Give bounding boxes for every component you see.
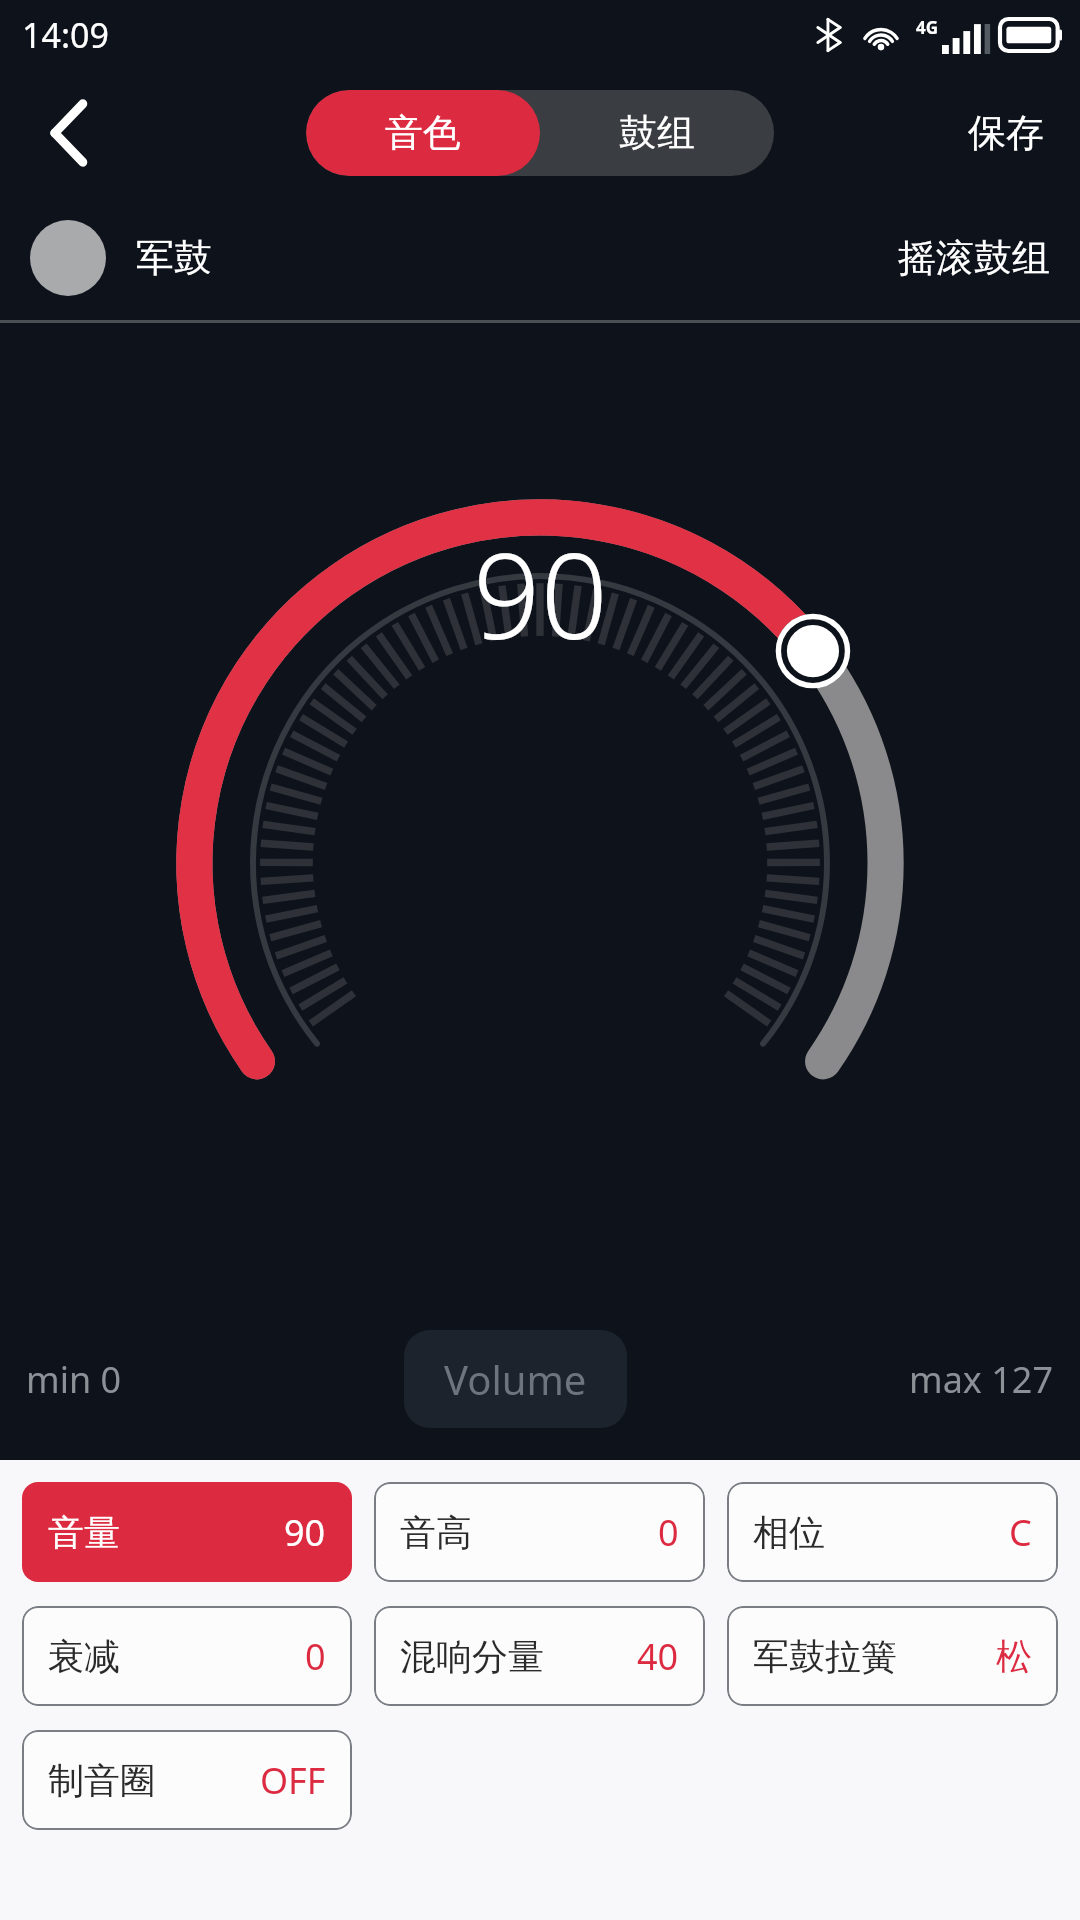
staticText: OFF	[260, 1756, 326, 1805]
button[interactable]: 音高	[374, 1482, 705, 1582]
staticText: 音高	[400, 1510, 472, 1555]
staticText: 军鼓	[136, 234, 212, 282]
staticText: 制音圈	[48, 1758, 156, 1803]
staticText: 保存	[968, 109, 1044, 157]
button[interactable]: 混响分量	[374, 1606, 705, 1706]
button[interactable]: 衰减	[22, 1606, 352, 1706]
staticText: 松	[996, 1634, 1032, 1679]
staticText: 0	[305, 1632, 326, 1681]
staticText: 4G	[916, 16, 939, 39]
staticText: 音色	[385, 109, 461, 157]
button[interactable]: 制音圈	[22, 1730, 352, 1830]
button[interactable]: 音色	[306, 90, 540, 176]
staticText: 90	[473, 513, 608, 674]
staticText: 音量	[48, 1510, 120, 1555]
staticText: 相位	[753, 1510, 825, 1555]
button[interactable]: Back	[20, 83, 120, 183]
staticText: 混响分量	[400, 1634, 544, 1679]
staticText: 鼓组	[619, 109, 695, 157]
staticText: 军鼓拉簧	[753, 1634, 897, 1679]
button[interactable]: 保存	[958, 99, 1054, 167]
staticText: 摇滚鼓组	[898, 234, 1050, 282]
staticText: max 127	[909, 1355, 1054, 1404]
button[interactable]: 军鼓拉簧	[727, 1606, 1058, 1706]
button[interactable]: 音量	[22, 1482, 352, 1582]
other: Volume dial	[0, 323, 1080, 1460]
staticText: 14:09	[22, 12, 109, 58]
staticText: C	[1009, 1508, 1032, 1557]
staticText: Volume	[444, 1352, 587, 1406]
staticText: 0	[658, 1508, 679, 1557]
button[interactable]: 相位	[727, 1482, 1058, 1582]
button[interactable]: Volume	[404, 1330, 627, 1428]
staticText: 90	[284, 1508, 326, 1557]
staticText: 衰减	[48, 1634, 120, 1679]
button[interactable]: 军鼓	[0, 195, 1080, 320]
button[interactable]: 鼓组	[540, 90, 774, 176]
staticText: min 0	[26, 1355, 122, 1404]
staticText: 40	[637, 1632, 679, 1681]
